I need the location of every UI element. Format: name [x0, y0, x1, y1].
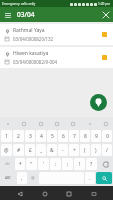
button[interactable]: ; — [62, 158, 73, 170]
staticText: ! — [79, 161, 81, 168]
staticText: ) — [95, 147, 97, 154]
button[interactable]: ! — [74, 158, 85, 170]
button[interactable]: ? — [86, 158, 97, 170]
staticText: 3 — [29, 133, 32, 140]
button[interactable]: Hiwen kasatiya — [0, 47, 113, 68]
button[interactable]: @ — [1, 144, 12, 156]
button[interactable]: =\< — [1, 158, 14, 170]
staticText: + — [73, 147, 76, 154]
button[interactable]: 9 — [91, 130, 101, 142]
button[interactable]: ( — [80, 144, 90, 156]
button[interactable]: ABC — [1, 172, 16, 184]
button[interactable]: ' — [38, 158, 49, 170]
button[interactable]: Keyboard tool 4 — [68, 119, 77, 128]
button[interactable]: 2 — [13, 130, 24, 142]
button[interactable]: + — [69, 144, 79, 156]
button[interactable]: £ — [25, 144, 35, 156]
staticText: ABC — [5, 176, 12, 180]
button[interactable]: Backspace — [98, 158, 112, 170]
button[interactable]: Close — [100, 9, 111, 20]
button[interactable]: Keyboard tool 0 — [3, 119, 12, 128]
staticText: . — [89, 175, 91, 182]
staticText: , — [21, 175, 23, 182]
staticText: " — [30, 161, 33, 168]
staticText: 0 — [106, 133, 109, 140]
button[interactable]: Keyboard tool 6 — [101, 119, 110, 128]
button[interactable]: Favorite — [100, 30, 109, 39]
button[interactable]: # — [13, 144, 24, 156]
staticText: - — [62, 147, 64, 154]
staticText: £ — [29, 147, 32, 154]
staticText: 03/04/0000820/132 — [13, 36, 54, 42]
button[interactable]: Back — [14, 188, 25, 199]
button[interactable]: Hide keyboard — [88, 188, 99, 199]
staticText: : — [55, 161, 57, 168]
button[interactable]: Recents — [63, 188, 74, 199]
staticText: ☺ — [31, 176, 35, 180]
button[interactable]: Keyboard tool 1 — [19, 119, 28, 128]
staticText: 03/04 — [17, 10, 35, 19]
staticText: _ — [40, 147, 43, 154]
button[interactable]: / — [102, 144, 112, 156]
staticText: 1:20 pm — [98, 2, 111, 6]
button[interactable]: ) — [91, 144, 101, 156]
staticText: 03/04/0000082/9-004 — [13, 59, 57, 65]
button[interactable]: 7 — [69, 130, 79, 142]
staticText: # — [17, 147, 21, 154]
staticText: Emergency calls only — [2, 1, 36, 6]
button[interactable]: Menu — [2, 9, 13, 20]
staticText: 7 — [73, 133, 76, 140]
button[interactable]: " — [26, 158, 37, 170]
staticText: ' — [43, 161, 45, 168]
button[interactable]: 8 — [80, 130, 90, 142]
staticText: 1 — [5, 133, 8, 140]
button[interactable]: 5 — [47, 130, 57, 142]
button[interactable]: _ — [36, 144, 46, 156]
staticText: Rathmal Yaya — [13, 27, 45, 34]
button[interactable]: Show on map — [90, 94, 107, 111]
button[interactable]: ☺ — [28, 172, 38, 184]
button[interactable]: - — [58, 144, 68, 156]
button[interactable]: . — [85, 172, 95, 184]
button[interactable]: 0 — [102, 130, 112, 142]
staticText: 2 — [17, 133, 20, 140]
staticText: 4 — [40, 133, 43, 140]
staticText: 8 — [84, 133, 87, 140]
staticText: / — [106, 147, 108, 154]
button[interactable]: Home — [39, 188, 50, 199]
button[interactable]: 4 — [36, 130, 46, 142]
button[interactable]: & — [47, 144, 57, 156]
button[interactable]: Favorite — [100, 53, 109, 62]
button[interactable]: 3 — [25, 130, 35, 142]
button[interactable]: Keyboard tool 5 — [85, 119, 94, 128]
staticText: ( — [84, 147, 86, 154]
button[interactable]: Rathmal Yaya — [0, 24, 113, 45]
staticText: ; — [67, 161, 69, 168]
button[interactable]: 1 — [1, 130, 12, 142]
staticText: ? — [90, 161, 93, 168]
button[interactable]: , — [17, 172, 27, 184]
staticText: =\< — [5, 162, 10, 166]
button[interactable]: : — [50, 158, 61, 170]
staticText: 6 — [62, 133, 65, 140]
button[interactable]: Keyboard tool 3 — [52, 119, 61, 128]
button[interactable]: * — [15, 158, 25, 170]
staticText: & — [50, 147, 54, 154]
button[interactable]: 6 — [58, 130, 68, 142]
staticText: 9 — [95, 133, 98, 140]
staticText: @ — [4, 147, 9, 154]
button[interactable]: Keyboard tool 2 — [36, 119, 45, 128]
staticText: 5 — [51, 133, 54, 140]
staticText: Hiwen kasatiya — [13, 50, 49, 57]
button[interactable]: Search — [96, 172, 112, 184]
staticText: * — [19, 161, 22, 168]
